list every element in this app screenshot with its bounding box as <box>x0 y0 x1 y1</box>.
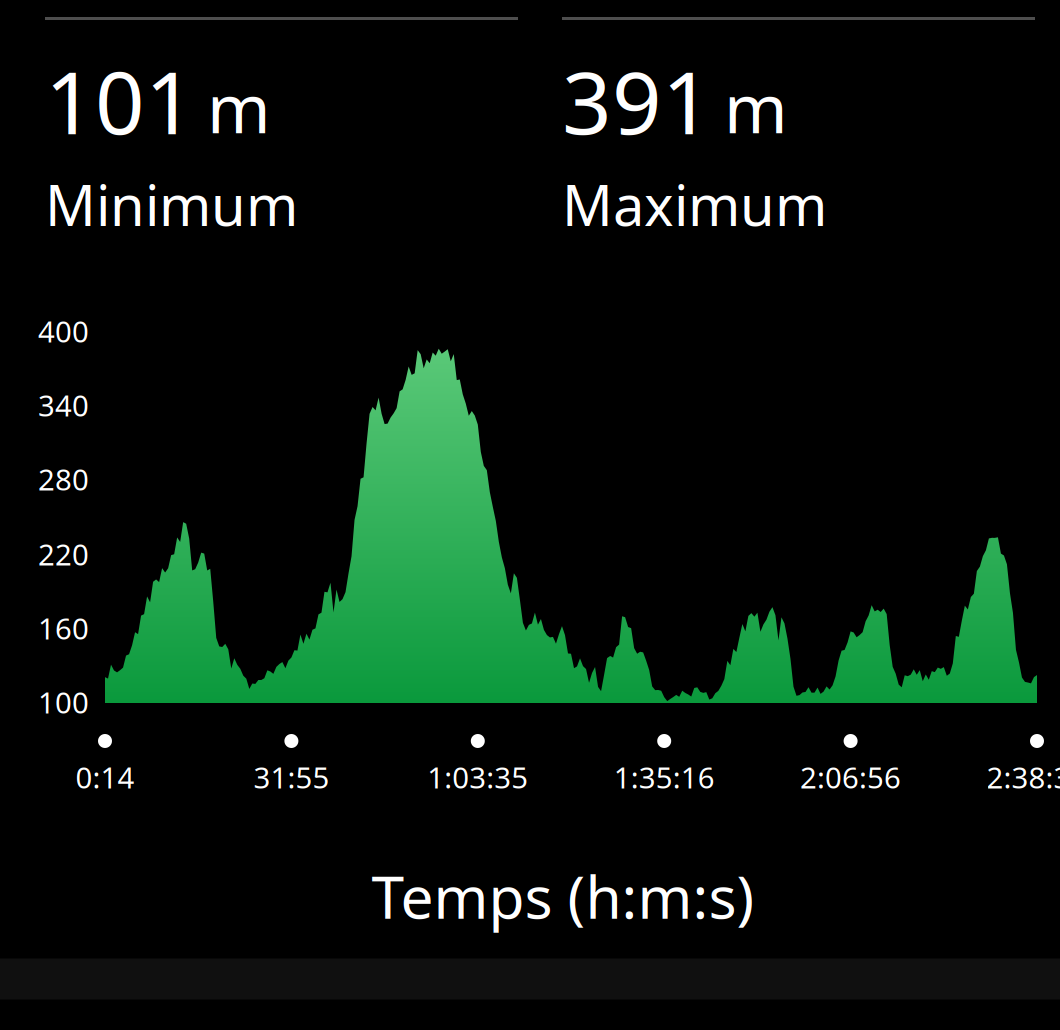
button[interactable]: 391 <box>562 15 1035 255</box>
staticText: 2:06:56 <box>800 757 901 796</box>
staticText: Temps (h:m:s) <box>371 857 754 935</box>
staticText: Minimum <box>45 167 298 241</box>
staticText: m <box>207 62 271 152</box>
staticText: 1:35:16 <box>614 757 715 796</box>
staticText: 2:38:37 <box>986 757 1060 796</box>
staticText: 160 <box>38 608 89 647</box>
staticText: 400 <box>38 311 89 350</box>
staticText: 1:03:35 <box>427 757 528 796</box>
staticText: 391 <box>562 43 712 158</box>
staticText: 101 <box>45 43 195 158</box>
staticText: 0:14 <box>75 757 134 796</box>
button[interactable]: 101 <box>45 15 518 255</box>
staticText: m <box>724 62 788 152</box>
staticText: Maximum <box>562 167 827 241</box>
staticText: 100 <box>38 682 89 721</box>
staticText: 31:55 <box>253 757 329 796</box>
staticText: 340 <box>38 385 89 424</box>
staticText: 220 <box>38 534 89 573</box>
staticText: 280 <box>38 459 89 498</box>
